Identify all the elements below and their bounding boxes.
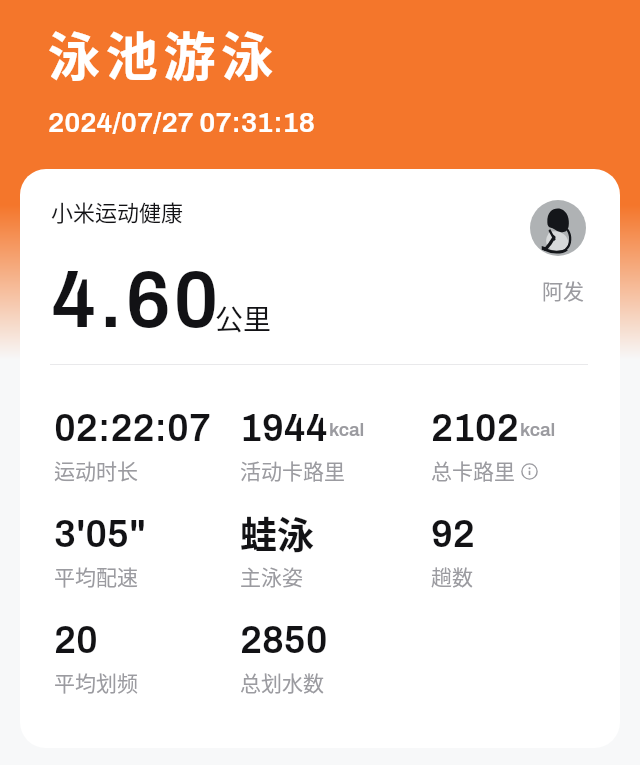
button[interactable]: 3'05"	[54, 514, 234, 598]
staticText: 92	[431, 514, 475, 555]
button[interactable]: 92	[431, 514, 611, 598]
button[interactable]: 2850	[240, 620, 420, 704]
staticText: 2024/07/27 07:31:18	[48, 107, 315, 137]
staticText: 20	[54, 620, 98, 661]
button[interactable]: More information	[521, 463, 538, 480]
staticText: 2850	[240, 620, 328, 661]
staticText: 02:22:07	[54, 408, 211, 449]
staticText: kcal	[520, 419, 556, 440]
staticText: 平均划频	[54, 667, 138, 697]
button[interactable]: 20	[54, 620, 234, 704]
staticText: 2102	[431, 408, 519, 449]
button[interactable]: 1944	[240, 408, 420, 492]
staticText: 4.60	[51, 258, 222, 344]
staticText: 活动卡路里	[240, 455, 345, 485]
staticText: 阿发	[542, 275, 584, 305]
staticText: kcal	[329, 419, 365, 440]
staticText: 主泳姿	[240, 561, 303, 591]
button[interactable]: Profile avatar	[530, 200, 586, 256]
staticText: 3'05"	[54, 514, 146, 555]
button[interactable]: 蛙泳	[240, 514, 420, 598]
staticText: 小米运动健康	[51, 195, 184, 227]
staticText: 蛙泳	[240, 506, 314, 560]
staticText: 趟数	[431, 561, 473, 591]
staticText: 1944	[240, 408, 328, 449]
staticText: 总卡路里	[431, 455, 515, 485]
staticText: 总划水数	[240, 667, 324, 697]
staticText: 平均配速	[54, 561, 138, 591]
staticText: 运动时长	[54, 455, 138, 485]
button[interactable]: 2102	[431, 408, 611, 492]
staticText: 公里	[215, 298, 272, 339]
button[interactable]: 02:22:07	[54, 408, 234, 492]
staticText: 泳池游泳	[48, 16, 279, 91]
